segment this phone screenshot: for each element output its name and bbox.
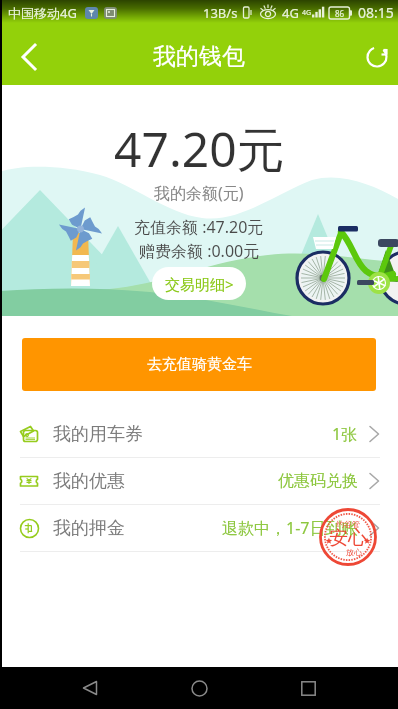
- staticText: 4G: [282, 4, 299, 22]
- button[interactable]: Back: [70, 668, 110, 708]
- button[interactable]: Refresh: [356, 36, 398, 78]
- staticText: 退款中，1-7日到账: [222, 517, 358, 539]
- staticText: 约谷管: [336, 519, 360, 529]
- staticText: 中国移动4G: [8, 4, 77, 22]
- staticText: 86: [335, 8, 345, 19]
- staticText: 47.20元: [114, 116, 285, 182]
- button[interactable]: Back: [6, 34, 52, 80]
- staticText: 安心: [329, 526, 367, 550]
- staticText: 充值余额 :47.20元: [134, 216, 264, 238]
- staticText: 我的用车券: [53, 423, 143, 446]
- staticText: 08:15: [358, 3, 394, 22]
- staticText: 13B/s: [203, 4, 238, 22]
- staticText: 我的优惠: [53, 470, 125, 493]
- button[interactable]: Home: [179, 668, 219, 708]
- button[interactable]: 去充值骑黄金车: [22, 338, 376, 391]
- button[interactable]: 我的用车券: [0, 411, 398, 457]
- staticText: 赠费余额 :0.00元: [139, 240, 260, 262]
- staticText: 我的钱包: [153, 42, 245, 71]
- staticText: 我的余额(元): [154, 182, 244, 204]
- staticText: 1张: [332, 423, 358, 445]
- staticText: 4G: [302, 8, 312, 18]
- staticText: 去充值骑黄金车: [147, 355, 252, 374]
- button[interactable]: 交易明细>: [152, 267, 246, 300]
- staticText: 优惠码兑换: [278, 471, 358, 491]
- button[interactable]: 我的押金: [0, 505, 398, 551]
- staticText: 交易明细>: [165, 274, 234, 294]
- staticText: 放心: [346, 547, 362, 557]
- button[interactable]: 我的优惠: [0, 458, 398, 504]
- button[interactable]: Recent apps: [288, 668, 328, 708]
- staticText: 我的押金: [53, 517, 125, 540]
